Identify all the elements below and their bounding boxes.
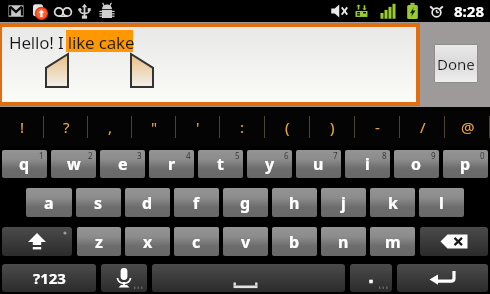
staticText: 8:28	[454, 1, 484, 21]
button[interactable]: ?123	[2, 264, 96, 292]
button[interactable]: h	[272, 188, 317, 217]
staticText: e	[118, 153, 128, 175]
button[interactable]: s	[76, 188, 121, 217]
staticText: 0	[480, 150, 485, 161]
button[interactable]: m	[370, 227, 415, 256]
button[interactable]: "	[132, 107, 176, 146]
button[interactable]: u	[296, 150, 341, 178]
staticText: b	[289, 231, 300, 253]
button[interactable]: Delete	[420, 227, 488, 256]
staticText: "	[151, 117, 158, 137]
staticText: u	[313, 153, 324, 175]
button[interactable]: ,	[88, 107, 132, 146]
button[interactable]: Shift	[2, 227, 72, 256]
button[interactable]: Enter	[397, 264, 488, 292]
button[interactable]: ?	[44, 107, 88, 146]
staticText: a	[44, 192, 54, 214]
staticText: p	[460, 153, 471, 175]
staticText: 2	[88, 150, 93, 161]
button[interactable]: d	[125, 188, 170, 217]
staticText: -	[375, 117, 380, 137]
staticText: 5	[235, 150, 240, 161]
staticText: '	[196, 117, 200, 137]
staticText: ?	[63, 117, 70, 137]
button[interactable]: :	[220, 107, 265, 146]
staticText: t	[217, 153, 224, 175]
button[interactable]: @	[445, 107, 490, 146]
staticText: 8	[382, 150, 387, 161]
button[interactable]: w	[51, 150, 96, 178]
staticText: s	[94, 192, 103, 214]
staticText: q	[19, 153, 30, 175]
button[interactable]: a	[26, 188, 72, 217]
staticText: ?123	[33, 268, 66, 288]
button[interactable]: v	[223, 227, 268, 256]
button[interactable]: Voice input	[101, 264, 147, 292]
staticText: h	[289, 192, 300, 214]
staticText: :	[240, 117, 245, 137]
button[interactable]: Done	[435, 45, 477, 82]
button[interactable]: o	[394, 150, 439, 178]
staticText: /	[420, 117, 426, 137]
staticText: k	[388, 192, 398, 214]
staticText: x	[143, 231, 153, 253]
button[interactable]: i	[345, 150, 390, 178]
button[interactable]: l	[419, 188, 464, 217]
button[interactable]: z	[77, 227, 121, 256]
button[interactable]: x	[125, 227, 170, 256]
staticText: 9	[431, 150, 436, 161]
staticText: d	[142, 192, 153, 214]
button[interactable]: b	[272, 227, 317, 256]
staticText: j	[341, 192, 346, 214]
button[interactable]: c	[174, 227, 219, 256]
staticText: r	[168, 153, 176, 175]
staticText: !	[20, 117, 25, 137]
button[interactable]: (	[265, 107, 310, 146]
staticText: 1	[39, 150, 44, 161]
staticText: 4	[186, 150, 191, 161]
staticText: c	[192, 231, 201, 253]
button[interactable]: )	[310, 107, 355, 146]
button[interactable]: g	[223, 188, 268, 217]
button[interactable]: p	[443, 150, 488, 178]
staticText: (	[285, 117, 290, 137]
button[interactable]: r	[149, 150, 194, 178]
button[interactable]: j	[321, 188, 366, 217]
staticText: l	[439, 192, 444, 214]
button[interactable]: Hello! I like cake	[2, 27, 416, 102]
staticText: f	[193, 192, 200, 214]
staticText: v	[241, 231, 251, 253]
staticText: @	[461, 117, 475, 137]
staticText: y	[265, 153, 275, 175]
button[interactable]: Space	[152, 264, 345, 292]
staticText: w	[67, 153, 81, 175]
staticText: )	[330, 117, 335, 137]
button[interactable]: f	[174, 188, 219, 217]
staticText: o	[411, 153, 422, 175]
button[interactable]: y	[247, 150, 292, 178]
button[interactable]: e	[100, 150, 145, 178]
button[interactable]: Period	[350, 264, 392, 292]
button[interactable]: n	[321, 227, 366, 256]
button[interactable]: /	[400, 107, 445, 146]
button[interactable]: q	[2, 150, 47, 178]
button[interactable]: -	[355, 107, 400, 146]
staticText: ,	[108, 117, 113, 137]
staticText: 3	[137, 150, 142, 161]
button[interactable]: '	[176, 107, 220, 146]
button[interactable]: k	[370, 188, 415, 217]
staticText: 6	[284, 150, 289, 161]
staticText: i	[365, 153, 370, 175]
staticText: Done	[437, 54, 475, 74]
button[interactable]: !	[0, 107, 44, 146]
staticText: 7	[333, 150, 338, 161]
staticText: n	[338, 231, 349, 253]
staticText: g	[240, 192, 251, 214]
staticText: Hello! I like cake	[9, 31, 135, 54]
staticText: m	[385, 231, 401, 253]
button[interactable]: t	[198, 150, 243, 178]
staticText: z	[95, 231, 103, 253]
